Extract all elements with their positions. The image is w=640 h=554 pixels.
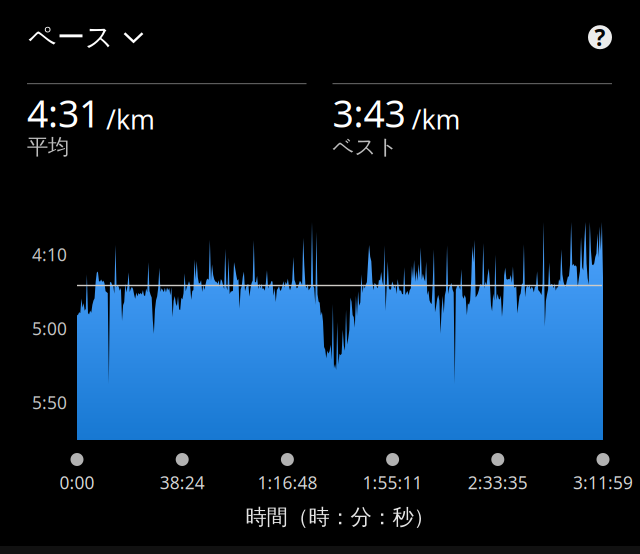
- staticText: 平均: [27, 134, 69, 160]
- staticText: 38:24: [160, 471, 205, 494]
- staticText: /km: [411, 101, 460, 137]
- staticText: ペース: [28, 20, 114, 54]
- staticText: 4:10: [32, 243, 67, 266]
- button[interactable]: ペース: [28, 14, 144, 60]
- staticText: 時間（時：分：秒）: [245, 504, 434, 530]
- staticText: 1:16:48: [257, 471, 317, 494]
- staticText: 0:00: [59, 471, 94, 494]
- staticText: ベスト: [332, 134, 398, 160]
- button[interactable]: ヘルプ: [588, 25, 612, 49]
- staticText: /km: [106, 101, 155, 137]
- staticText: 1:55:11: [363, 471, 423, 494]
- staticText: 4:31: [27, 88, 100, 138]
- staticText: 3:43: [332, 88, 405, 138]
- staticText: ?: [594, 22, 605, 52]
- staticText: 3:11:59: [573, 471, 633, 494]
- staticText: 5:50: [32, 391, 67, 414]
- staticText: 5:00: [32, 317, 67, 340]
- staticText: 2:33:35: [468, 471, 528, 494]
